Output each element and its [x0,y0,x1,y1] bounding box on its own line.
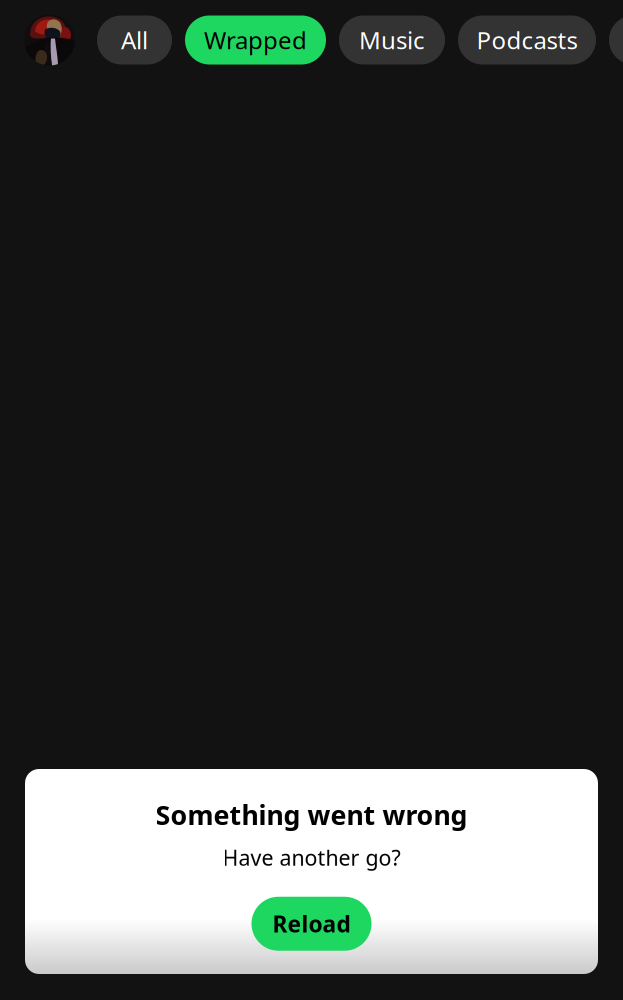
staticText: Wrapped [204,24,307,56]
staticText: Music [359,24,425,56]
button[interactable]: All [97,15,172,64]
button[interactable]: Wrapped [185,15,326,64]
staticText: Something went wrong [155,797,467,832]
button[interactable]: Reload [251,897,371,951]
button[interactable]: Music [339,15,445,64]
staticText: All [121,24,148,56]
staticText: Have another go? [222,843,400,872]
button[interactable]: Podcasts [458,15,596,64]
staticText: Reload [272,909,350,939]
staticText: Podcasts [476,24,577,56]
button[interactable]: Audiobooks [609,15,623,64]
button[interactable]: Profile [24,14,75,65]
